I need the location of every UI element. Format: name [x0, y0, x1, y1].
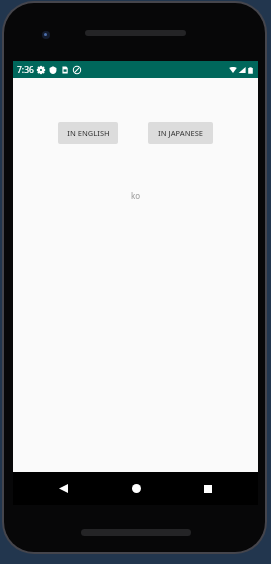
staticText: IN ENGLISH: [67, 128, 110, 138]
staticText: 7:36: [17, 64, 34, 76]
staticText: ko: [13, 190, 258, 201]
button[interactable]: IN ENGLISH: [58, 122, 118, 144]
button[interactable]: Recent apps: [187, 472, 229, 505]
button[interactable]: Back: [42, 472, 84, 505]
button[interactable]: IN JAPANESE: [148, 122, 213, 144]
staticText: IN JAPANESE: [158, 128, 203, 138]
button[interactable]: Home: [115, 472, 157, 505]
